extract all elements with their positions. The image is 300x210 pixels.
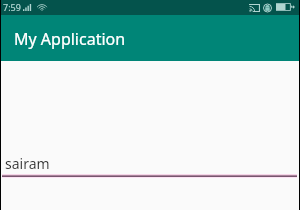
staticText: 7:59 <box>3 1 21 13</box>
other: Cast <box>249 4 260 12</box>
staticText: sairam <box>5 154 50 173</box>
button[interactable]: sairam <box>0 152 300 178</box>
staticText: My Application <box>14 28 126 50</box>
